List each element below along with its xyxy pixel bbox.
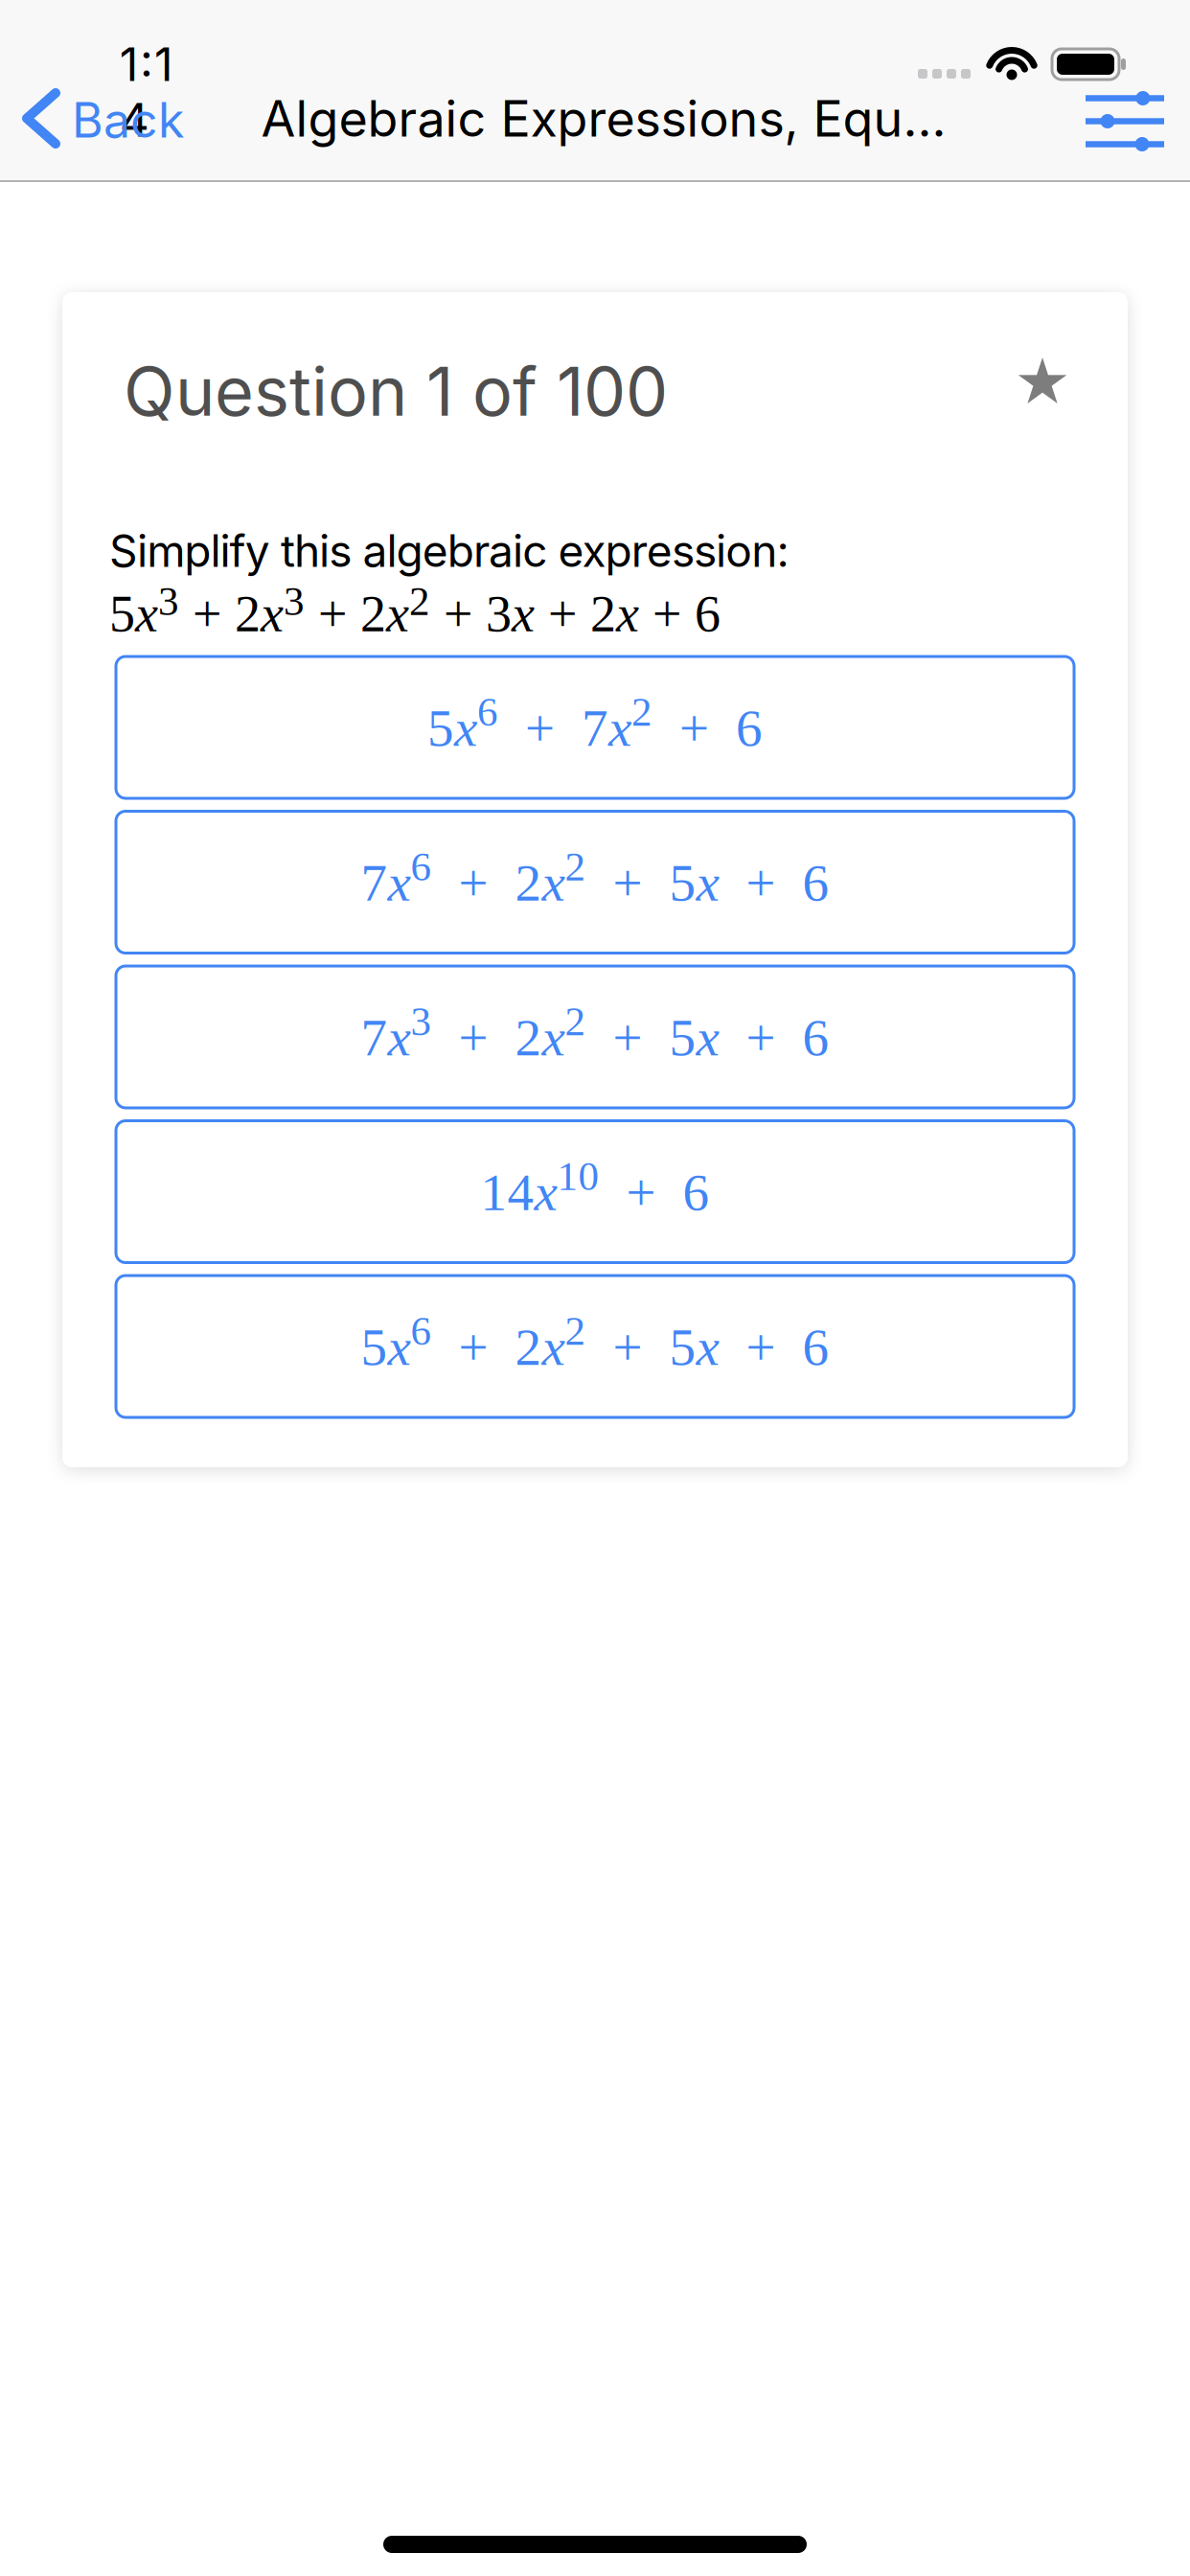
staticText: Question 1 of 100 (124, 351, 668, 432)
staticText: 1:14 (119, 36, 204, 92)
button[interactable]: 5x6 + 2x2 + 5x + 6 (116, 1276, 1074, 1417)
staticText: Simplify this algebraic expression: (109, 524, 789, 578)
staticText: 7x6 + 2x2 + 5x + 6 (361, 844, 829, 911)
button[interactable]: Bookmark (1018, 357, 1067, 403)
button[interactable]: 7x3 + 2x2 + 5x + 6 (116, 966, 1074, 1108)
staticText: Back (72, 91, 184, 149)
staticText: 5x6 + 7x2 + 6 (427, 690, 763, 757)
button[interactable]: 5x6 + 7x2 + 6 (116, 656, 1074, 798)
button[interactable]: 7x6 + 2x2 + 5x + 6 (116, 811, 1074, 953)
staticText: 7x3 + 2x2 + 5x + 6 (361, 999, 829, 1066)
button[interactable]: Filter (1086, 91, 1164, 151)
button[interactable]: Back (27, 91, 184, 149)
button[interactable]: 14x10 + 6 (116, 1121, 1074, 1263)
staticText: 5x6 + 2x2 + 5x + 6 (361, 1309, 829, 1376)
staticText: Algebraic Expressions, Equ... (261, 88, 946, 148)
staticText: 5x3 + 2x3 + 2x2 + 3x + 2x + 6 (109, 579, 721, 642)
staticText: 14x10 + 6 (481, 1154, 709, 1221)
